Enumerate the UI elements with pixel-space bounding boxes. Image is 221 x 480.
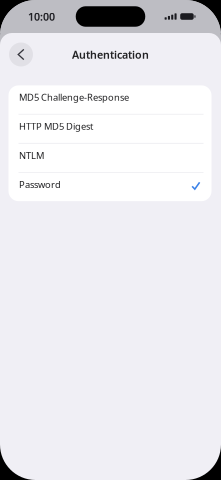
staticText: MD5 Challenge-Response <box>19 91 129 103</box>
staticText: 10:00 <box>28 9 55 24</box>
button[interactable]: Back <box>6 39 36 69</box>
staticText: Password <box>19 178 61 191</box>
button[interactable]: Password <box>8 173 211 201</box>
staticText: NTLM <box>19 149 44 161</box>
button[interactable]: NTLM <box>8 144 211 172</box>
button[interactable]: HTTP MD5 Digest <box>8 114 211 143</box>
staticText: Authentication <box>72 47 149 62</box>
button[interactable]: MD5 Challenge-Response <box>8 85 211 114</box>
staticText: HTTP MD5 Digest <box>19 120 93 132</box>
